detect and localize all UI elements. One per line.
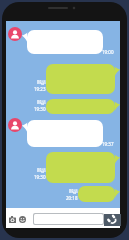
button[interactable]: Emoji bbox=[19, 216, 26, 223]
button[interactable] bbox=[21, 120, 103, 147]
staticText: 19:00 bbox=[102, 49, 114, 55]
staticText: 19:30 bbox=[34, 106, 46, 112]
button[interactable] bbox=[46, 152, 121, 183]
staticText: 既読 bbox=[69, 189, 78, 195]
staticText: 既読 bbox=[37, 80, 46, 86]
staticText: 20:18 bbox=[66, 195, 78, 201]
staticText: 19:30 bbox=[34, 174, 46, 180]
button[interactable] bbox=[78, 186, 121, 202]
staticText: 19:23 bbox=[34, 86, 46, 92]
staticText: 既読 bbox=[37, 168, 46, 174]
button[interactable]: Voice message bbox=[104, 214, 121, 226]
button[interactable] bbox=[46, 64, 121, 94]
staticText: 既読 bbox=[37, 100, 46, 106]
staticText: 19:37 bbox=[102, 141, 114, 147]
button[interactable] bbox=[21, 30, 103, 54]
button[interactable] bbox=[46, 99, 121, 114]
button[interactable]: Camera bbox=[9, 216, 16, 223]
